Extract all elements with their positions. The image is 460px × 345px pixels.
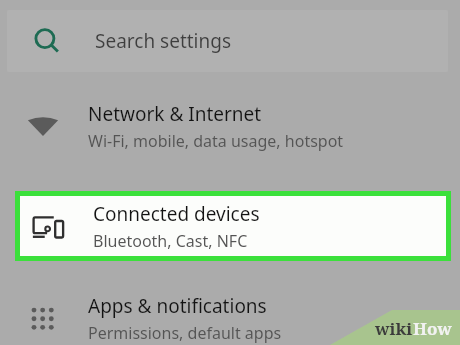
staticText: Apps & notifications <box>88 293 267 319</box>
staticText: Connected devices <box>93 201 260 227</box>
staticText: Wi-Fi, mobile, data usage, hotspot <box>88 130 344 152</box>
staticText: Permissions, default apps <box>88 322 282 344</box>
staticText: wiki <box>375 317 413 340</box>
other: Apps and notifications <box>25 300 61 336</box>
button[interactable]: Search settings <box>7 10 448 72</box>
staticText: Bluetooth, Cast, NFC <box>93 230 248 252</box>
button[interactable]: Network and Internet <box>0 90 460 162</box>
other: Connected devices <box>30 208 66 244</box>
staticText: Network & Internet <box>88 101 262 127</box>
button[interactable]: Apps and notifications <box>0 282 460 345</box>
staticText: Search settings <box>95 28 232 54</box>
button[interactable]: Connected devices <box>20 196 446 256</box>
other: Network and Internet <box>25 108 61 144</box>
staticText: How <box>413 317 452 340</box>
